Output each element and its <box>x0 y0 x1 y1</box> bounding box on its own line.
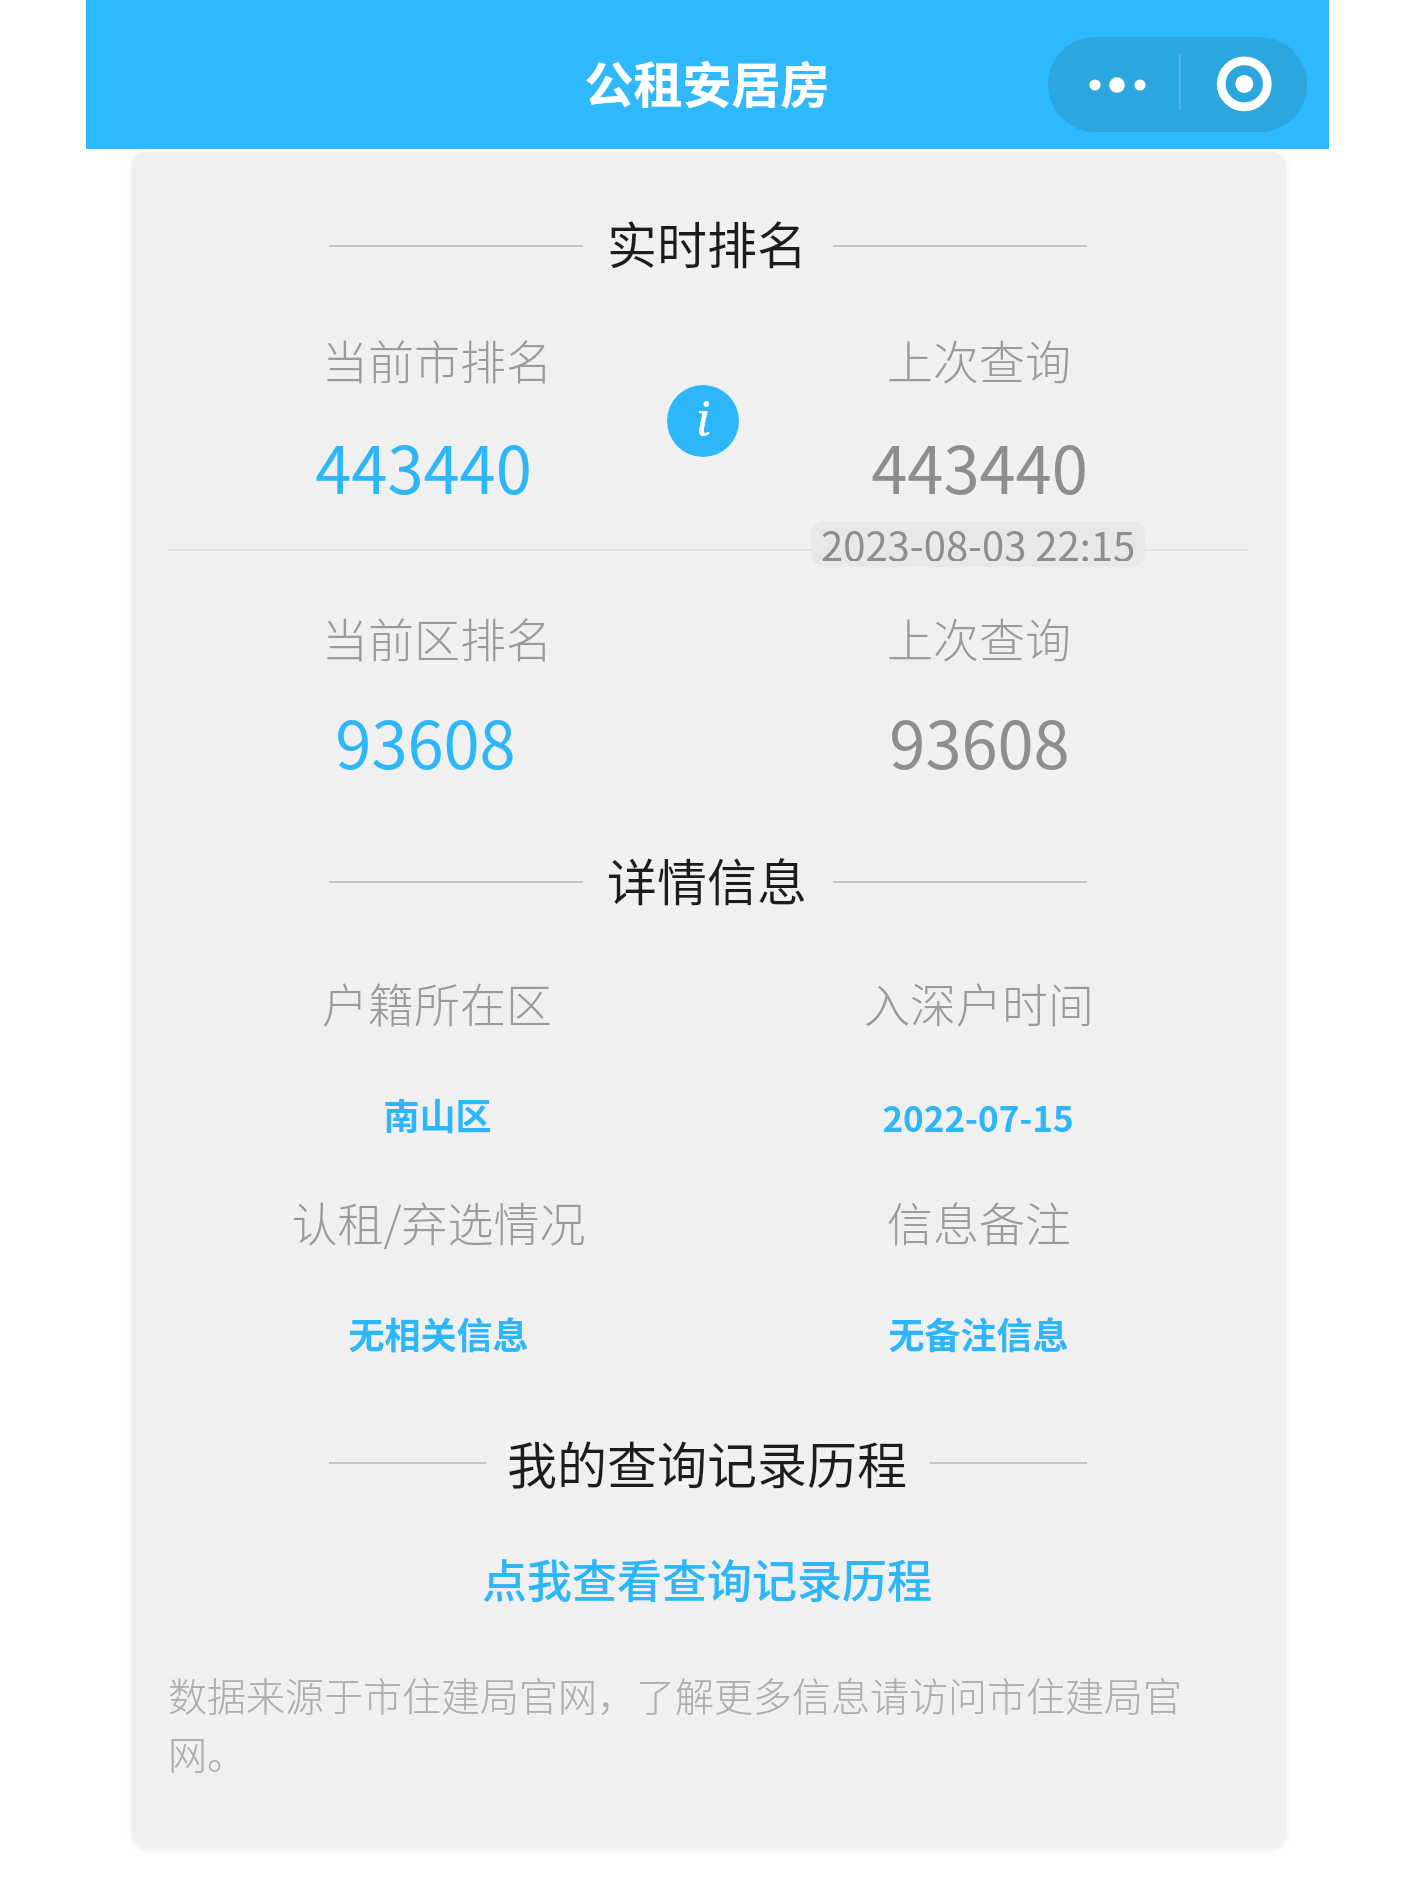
staticText: 无备注信息 <box>888 1307 1069 1359</box>
staticText: 南山区 <box>383 1088 492 1140</box>
staticText: 我的查询记录历程 <box>507 1426 907 1498</box>
staticText: 详情信息 <box>607 843 807 915</box>
staticText: 当前区排名 <box>322 604 552 671</box>
staticText: 上次查询 <box>887 604 1071 671</box>
staticText: 点我查看查询记录历程 <box>482 1546 933 1611</box>
staticText: 上次查询 <box>887 326 1071 393</box>
button[interactable]: 点我查看查询记录历程 <box>460 1538 955 1618</box>
staticText: 户籍所在区 <box>322 969 552 1036</box>
staticText: 无相关信息 <box>348 1307 529 1359</box>
staticText: 数据来源于市住建局官网，了解更多信息请访问市住建局官网。 <box>168 1666 1214 1780</box>
staticText: 认租/弃选情况 <box>291 1188 586 1255</box>
staticText: 实时排名 <box>607 206 807 278</box>
staticText: 公租安居房 <box>584 46 830 117</box>
button[interactable]: Close mini program <box>1179 37 1307 132</box>
button[interactable]: More options <box>1048 37 1179 132</box>
staticText: 信息备注 <box>887 1188 1071 1255</box>
staticText: 2023-08-03 22:15 <box>821 521 1136 561</box>
staticText: 93608 <box>889 694 1070 788</box>
staticText: 当前市排名 <box>322 326 552 393</box>
staticText: 443440 <box>315 419 532 513</box>
staticText: 443440 <box>871 419 1088 513</box>
staticText: 2022-07-15 <box>882 1091 1074 1142</box>
staticText: 93608 <box>335 694 516 788</box>
button[interactable]: Ranking info <box>667 385 739 457</box>
staticText: 入深户时间 <box>864 969 1094 1036</box>
staticText: i <box>696 387 710 450</box>
